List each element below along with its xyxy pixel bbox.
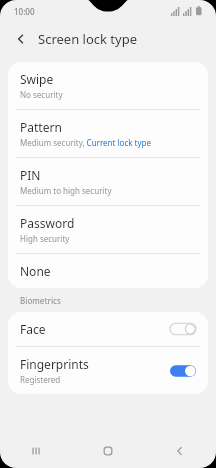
staticText: Face — [20, 321, 46, 337]
staticText: High security — [20, 233, 70, 244]
button[interactable]: Face — [8, 312, 208, 346]
button[interactable]: Swipe — [8, 62, 208, 109]
staticText: Medium security, Current lock type — [20, 137, 151, 148]
staticText: None — [20, 263, 51, 279]
button[interactable]: Password — [8, 206, 208, 253]
staticText: Pattern — [20, 119, 62, 135]
staticText: Medium to high security — [20, 185, 112, 196]
staticText: No security — [20, 89, 63, 100]
staticText: Password — [20, 215, 75, 231]
button[interactable]: Back — [144, 434, 216, 468]
button[interactable]: Back — [8, 26, 34, 52]
staticText: Fingerprints — [20, 356, 89, 372]
button[interactable]: Pattern — [8, 110, 208, 157]
staticText: Registered — [20, 374, 61, 385]
staticText: Biometrics — [20, 295, 61, 306]
staticText: PIN — [20, 167, 41, 183]
button[interactable]: None — [8, 254, 208, 288]
button[interactable]: Fingerprints — [8, 347, 208, 394]
button[interactable]: Home — [72, 434, 144, 468]
button[interactable]: PIN — [8, 158, 208, 205]
staticText: 10:00 — [14, 6, 35, 17]
button[interactable]: Recents — [0, 434, 72, 468]
staticText: Swipe — [20, 71, 54, 87]
staticText: Screen lock type — [38, 30, 137, 48]
